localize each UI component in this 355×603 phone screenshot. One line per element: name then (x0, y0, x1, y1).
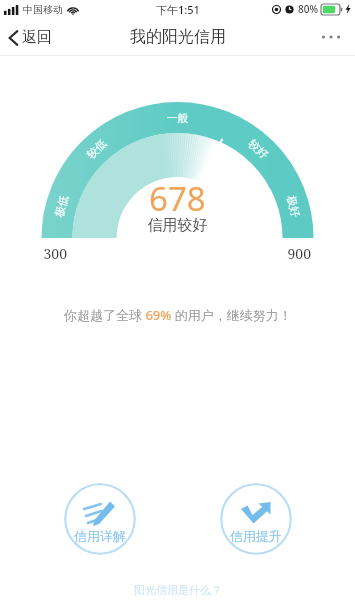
staticText: 我的阳光信用 (130, 27, 226, 47)
button[interactable]: 信用详解 (64, 483, 136, 555)
staticText: 信用提升 (230, 528, 282, 544)
button[interactable]: 信用提升 (220, 483, 292, 555)
staticText: 信用详解 (74, 528, 126, 544)
staticText: 你超越了全球 69% 的用户，继续努力！ (64, 306, 292, 324)
button[interactable]: 返回 (0, 21, 66, 54)
staticText: 下午1:51 (156, 2, 200, 17)
staticText: 中国移动 (23, 3, 63, 16)
button[interactable]: 阳光信用是什么？ (130, 579, 226, 601)
button[interactable]: More options (307, 24, 355, 50)
staticText: 80% (298, 2, 318, 16)
staticText: 阳光信用是什么？ (134, 583, 222, 597)
staticText: 返回 (22, 28, 52, 47)
